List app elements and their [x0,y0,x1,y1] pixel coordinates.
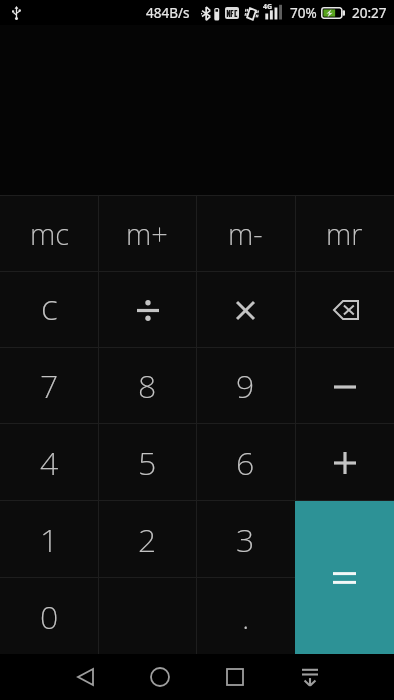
staticText: 8 [138,364,157,408]
button[interactable]: c [0,271,98,347]
button[interactable]: m+ [98,195,196,271]
button[interactable] [295,500,394,577]
button[interactable]: 5 [98,423,196,500]
staticText: . [242,595,250,639]
staticText: 3 [236,518,255,562]
button[interactable]: mc [0,195,98,271]
button[interactable] [295,577,394,654]
button[interactable]: Home [132,654,188,700]
button[interactable]: Plus [295,423,394,500]
staticText: 1 [40,518,59,562]
staticText: m+ [126,214,168,253]
button[interactable]: Back [57,654,113,700]
staticText: 9 [236,364,255,408]
button[interactable]: m- [196,195,295,271]
other: Plus [334,452,356,474]
staticText: 5 [138,441,157,485]
button[interactable]: 1 [0,500,98,577]
staticText: 2 [138,518,157,562]
button[interactable]: Minus [295,347,394,423]
button[interactable]: Recent apps [207,654,263,700]
staticText: 20:27 [352,4,387,22]
staticText: c [41,283,58,331]
button[interactable]: Backspace [295,271,394,347]
staticText: 4G [263,2,273,12]
other: Divide [137,300,159,321]
button[interactable]: 9 [196,347,295,423]
button[interactable]: Multiply [196,271,295,347]
button[interactable]: . [196,577,295,654]
staticText: mc [30,214,69,253]
button[interactable]: 7 [0,347,98,423]
other: Backspace [333,300,359,320]
button[interactable]: Equals [295,501,394,654]
other: Multiply [237,302,254,319]
button[interactable]: 0 [0,577,98,654]
staticText: 0 [40,595,59,639]
button[interactable]: 4 [0,423,98,500]
staticText: 70% [290,4,317,22]
button[interactable]: Divide [98,271,196,347]
other: Minus [334,385,356,389]
button[interactable]: 2 [98,500,196,577]
button[interactable]: mr [295,195,394,271]
staticText: 7 [40,364,59,408]
button[interactable]: Hide navigation bar [282,654,338,700]
staticText: 484B/s [146,4,190,22]
button[interactable]: 3 [196,500,295,577]
button[interactable]: 8 [98,347,196,423]
button[interactable]: 6 [196,423,295,500]
staticText: 6 [236,441,255,485]
staticText: m- [228,214,263,253]
staticText: 4 [40,441,59,485]
staticText: mr [326,214,363,253]
